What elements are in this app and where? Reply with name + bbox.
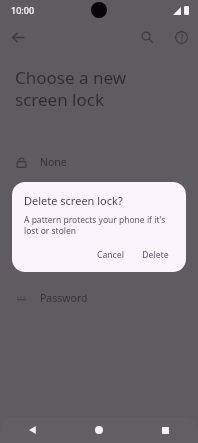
button[interactable]: PIN <box>0 249 198 275</box>
staticText: A pattern protects your phone if it's lo… <box>24 214 176 236</box>
button[interactable]: Search <box>135 25 159 49</box>
staticText: None <box>40 155 67 169</box>
staticText: Cancel <box>97 249 124 261</box>
button[interactable]: Home <box>88 419 110 441</box>
staticText: Password <box>40 291 88 305</box>
staticText: ? <box>180 32 184 43</box>
staticText: Choose a new screen lock <box>15 66 168 111</box>
button[interactable]: Recent apps <box>154 419 176 441</box>
button[interactable]: Help <box>169 25 193 49</box>
button[interactable]: Cancel <box>90 245 131 265</box>
button[interactable]: None <box>0 149 198 175</box>
button[interactable]: Delete <box>135 245 176 265</box>
button[interactable]: Back <box>4 24 30 50</box>
staticText: Delete <box>142 249 169 261</box>
button[interactable]: Back <box>22 419 44 441</box>
staticText: 10:00 <box>11 4 35 16</box>
button[interactable]: Password <box>0 285 198 311</box>
staticText: Delete screen lock? <box>24 193 123 208</box>
